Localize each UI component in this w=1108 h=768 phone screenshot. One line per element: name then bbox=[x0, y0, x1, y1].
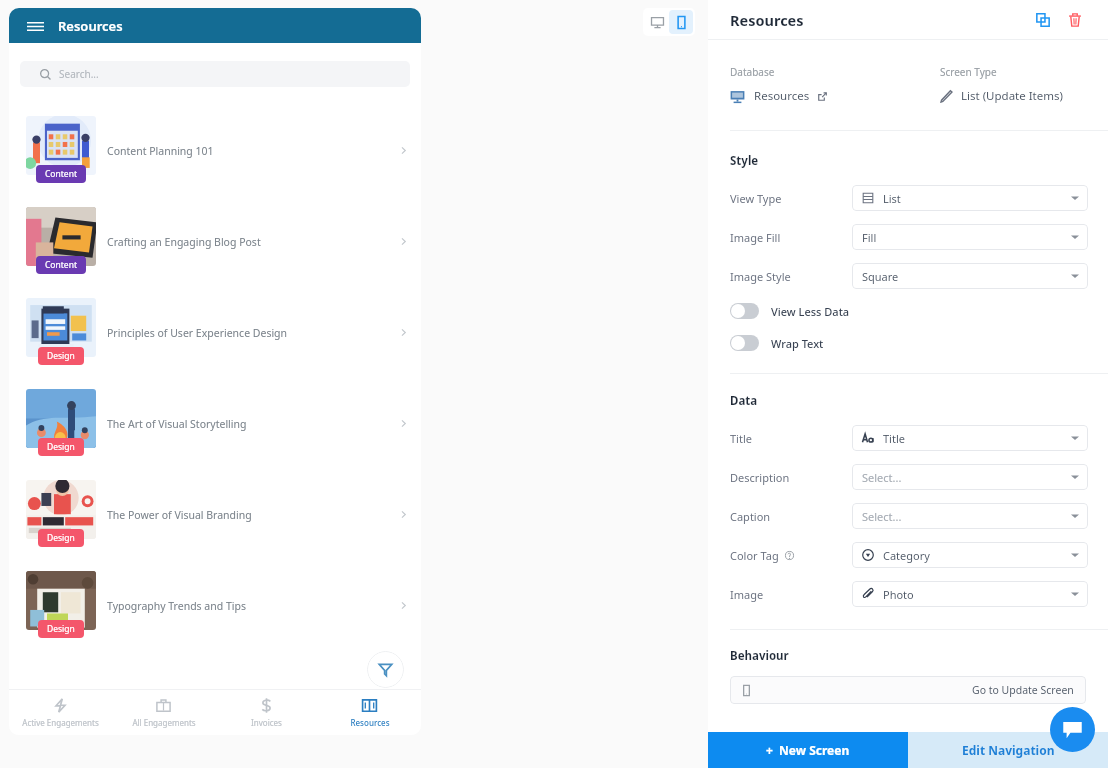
staticText: Design bbox=[47, 623, 75, 635]
button[interactable]: Mobile preview bbox=[669, 10, 693, 34]
button[interactable]: Design bbox=[9, 560, 421, 651]
staticText: Fill bbox=[862, 230, 877, 245]
button[interactable]: Design bbox=[9, 469, 421, 560]
button[interactable]: Wrap Text bbox=[730, 335, 824, 351]
button[interactable]: Square bbox=[852, 263, 1088, 289]
button[interactable]: View Less Data bbox=[730, 303, 850, 319]
button[interactable]: + New Screen bbox=[708, 732, 908, 768]
staticText: Category bbox=[883, 548, 930, 563]
button[interactable]: Delete bbox=[1064, 9, 1086, 31]
button[interactable]: Design bbox=[9, 287, 421, 378]
staticText: The Art of Visual Storytelling bbox=[107, 417, 398, 431]
button[interactable]: Duplicate bbox=[1032, 9, 1054, 31]
button[interactable]: Invoices bbox=[215, 690, 318, 735]
button[interactable]: All Engagements bbox=[112, 690, 215, 735]
button[interactable]: Title bbox=[852, 425, 1088, 451]
staticText: Resources bbox=[754, 88, 810, 104]
button[interactable]: List (Update Items) bbox=[940, 88, 1063, 104]
button[interactable]: Menu bbox=[22, 13, 48, 39]
staticText: + New Screen bbox=[766, 742, 850, 758]
staticText: Behaviour bbox=[730, 648, 789, 664]
staticText: Image Style bbox=[730, 269, 791, 284]
staticText: Image Fill bbox=[730, 230, 781, 245]
staticText: Title bbox=[730, 431, 752, 446]
staticText: Edit Navigation bbox=[962, 742, 1055, 758]
staticText: Wrap Text bbox=[771, 336, 824, 351]
staticText: Content bbox=[45, 259, 77, 271]
button[interactable]: List bbox=[852, 185, 1088, 211]
staticText: Content bbox=[45, 168, 77, 180]
staticText: Crafting an Engaging Blog Post bbox=[107, 235, 398, 249]
staticText: Content Planning 101 bbox=[107, 144, 398, 158]
button[interactable]: Content bbox=[9, 105, 421, 196]
button[interactable]: Select... bbox=[852, 464, 1088, 490]
staticText: Resources bbox=[350, 717, 390, 728]
staticText: Title bbox=[883, 431, 905, 446]
staticText: Description bbox=[730, 470, 790, 485]
staticText: Principles of User Experience Design bbox=[107, 326, 398, 340]
staticText: Invoices bbox=[251, 717, 282, 728]
staticText: Select... bbox=[862, 470, 902, 485]
button[interactable]: Select... bbox=[852, 503, 1088, 529]
staticText: View Less Data bbox=[771, 304, 850, 319]
staticText: Design bbox=[47, 441, 75, 453]
staticText: Screen Type bbox=[940, 65, 997, 79]
staticText: Style bbox=[730, 153, 759, 169]
staticText: Image bbox=[730, 587, 764, 602]
staticText: Search... bbox=[59, 67, 99, 81]
staticText: The Power of Visual Branding bbox=[107, 508, 398, 522]
staticText: View Type bbox=[730, 191, 782, 206]
staticText: Caption bbox=[730, 509, 771, 524]
button[interactable]: Edit Navigation bbox=[908, 732, 1108, 768]
staticText: Data bbox=[730, 393, 758, 409]
button[interactable]: Photo bbox=[852, 581, 1088, 607]
button[interactable]: Resources bbox=[730, 88, 827, 104]
button[interactable]: Filter bbox=[367, 651, 404, 688]
staticText: Select... bbox=[862, 509, 902, 524]
staticText: Design bbox=[47, 350, 75, 362]
button[interactable]: Category bbox=[852, 542, 1088, 568]
staticText: Color Tag bbox=[730, 548, 779, 563]
button[interactable]: Resources bbox=[318, 690, 421, 735]
staticText: Photo bbox=[883, 587, 914, 602]
button[interactable]: Design bbox=[9, 378, 421, 469]
button[interactable]: Search... bbox=[20, 61, 410, 87]
staticText: List (Update Items) bbox=[961, 88, 1063, 104]
button[interactable]: Desktop preview bbox=[645, 10, 669, 34]
staticText: Resources bbox=[58, 17, 123, 35]
staticText: Square bbox=[862, 269, 899, 284]
staticText: Resources bbox=[730, 10, 804, 30]
button[interactable]: Content bbox=[9, 196, 421, 287]
staticText: List bbox=[883, 191, 901, 206]
staticText: Database bbox=[730, 65, 775, 79]
button[interactable]: Active Engagements bbox=[9, 690, 112, 735]
button[interactable]: Go to Update Screen bbox=[730, 676, 1086, 704]
staticText: Design bbox=[47, 532, 75, 544]
button[interactable]: Fill bbox=[852, 224, 1088, 250]
staticText: Active Engagements bbox=[22, 717, 99, 728]
staticText: Typography Trends and Tips bbox=[107, 599, 398, 613]
staticText: All Engagements bbox=[132, 717, 196, 728]
staticText: Go to Update Screen bbox=[972, 683, 1074, 697]
button[interactable]: Chat support bbox=[1050, 707, 1095, 752]
